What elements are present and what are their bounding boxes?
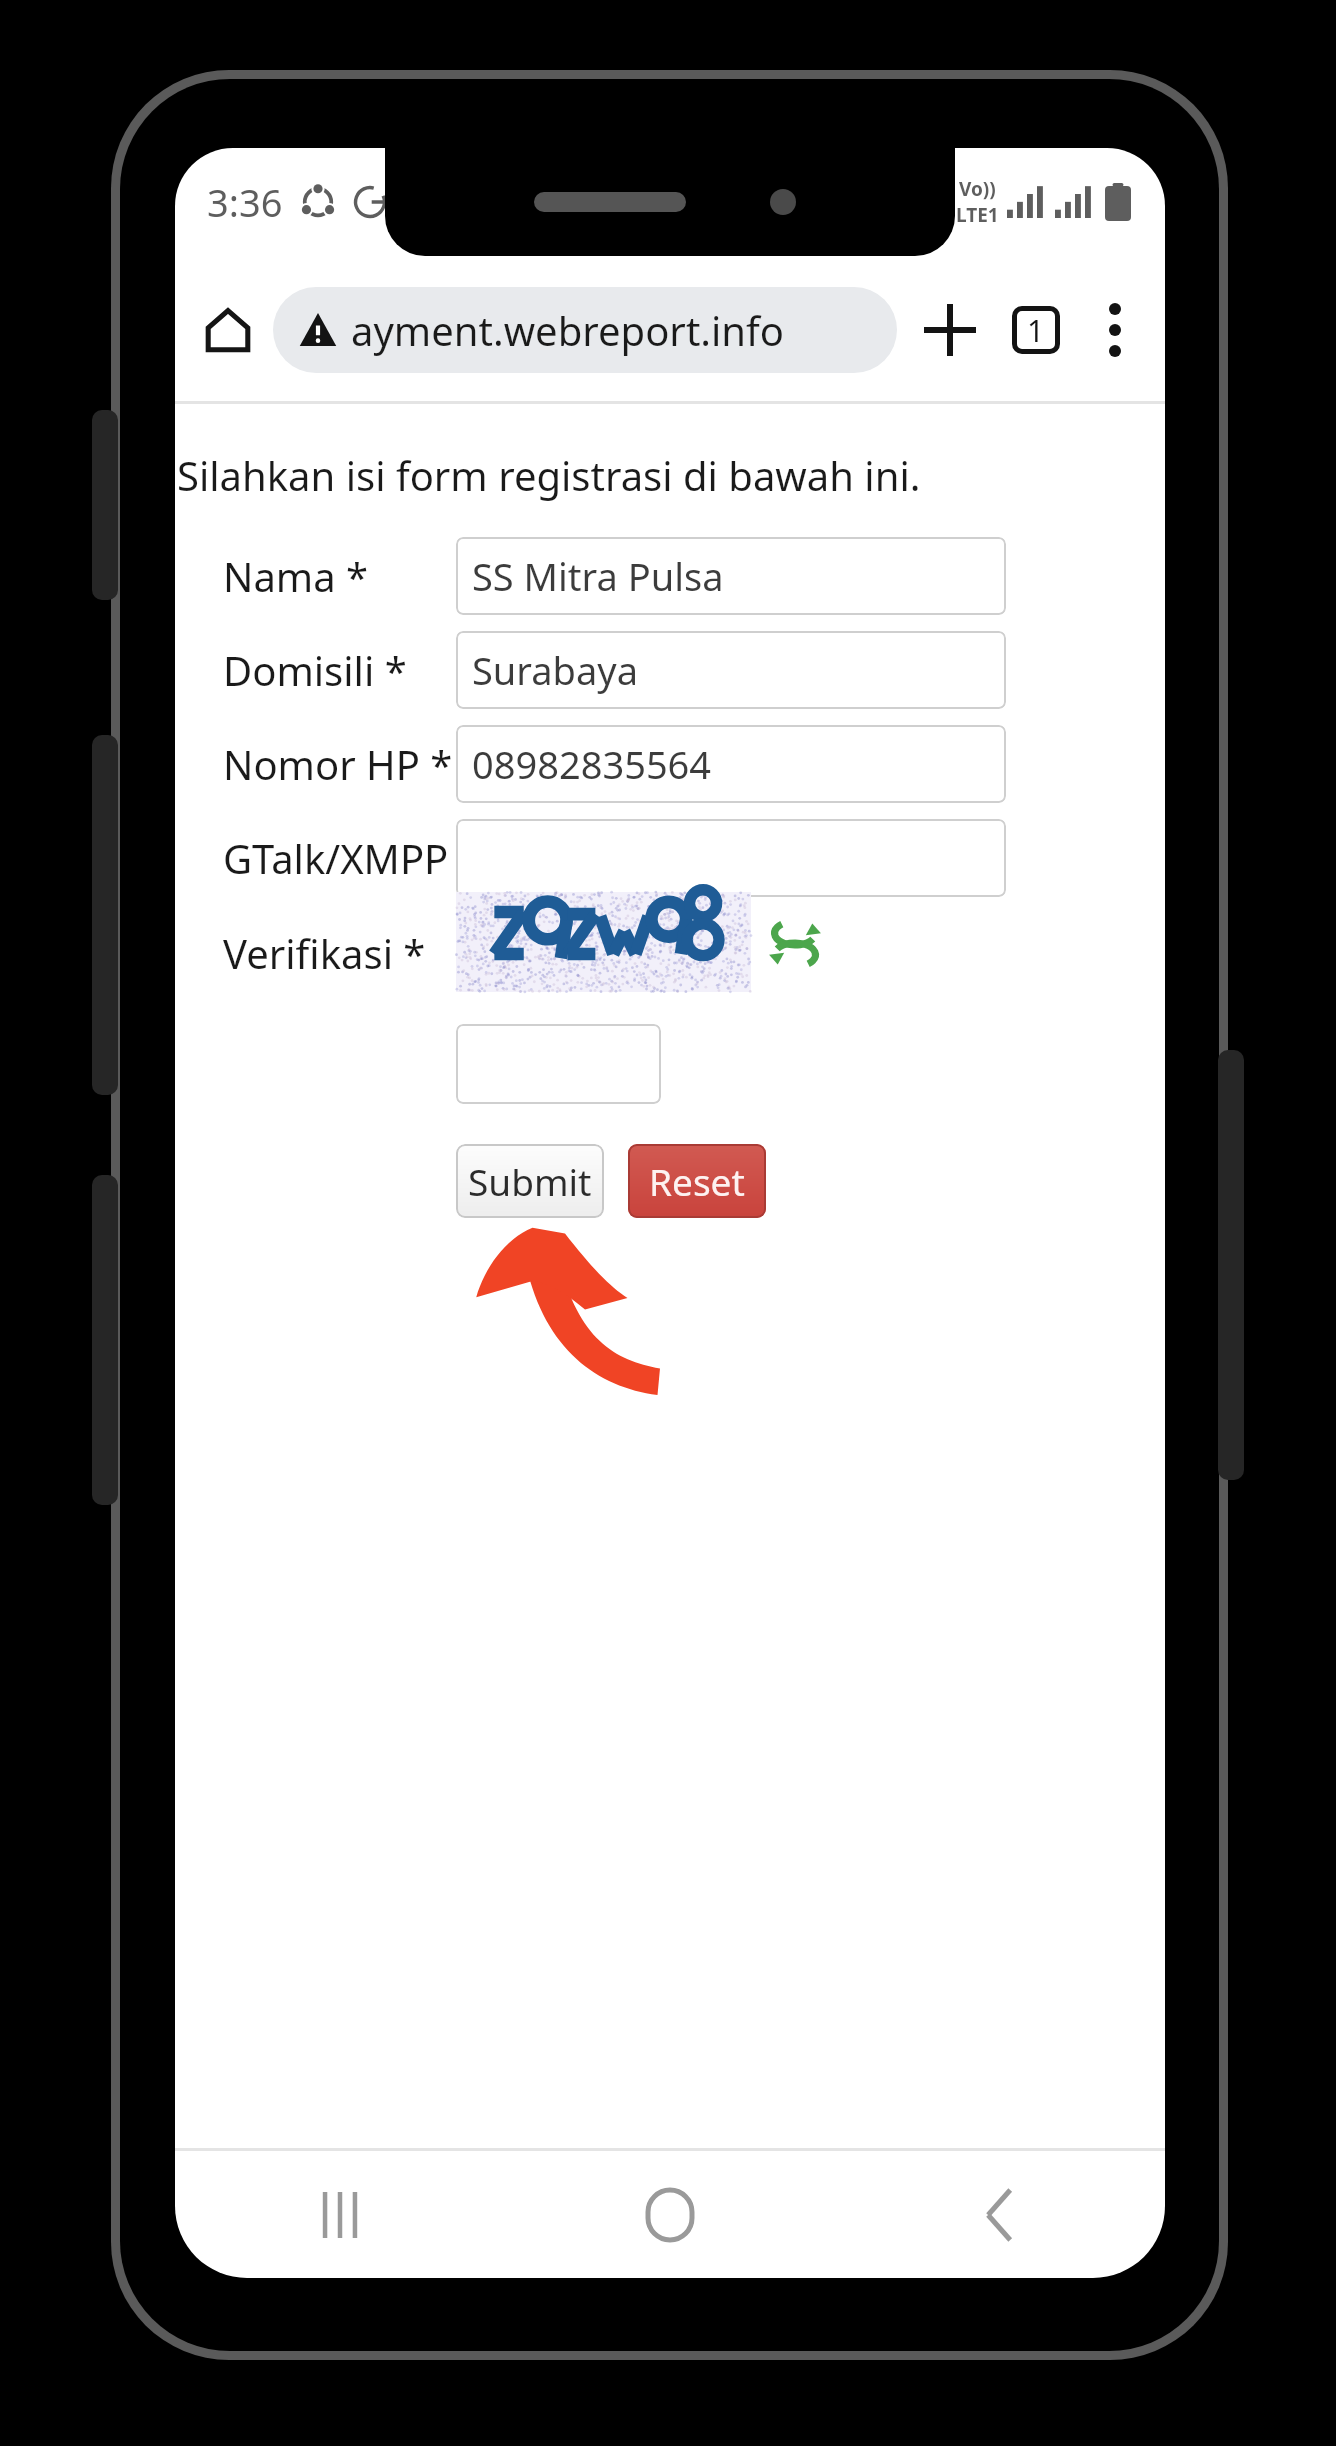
staticText: Verifikasi * [223,926,426,980]
staticText: Nomor HP * [223,737,453,791]
button[interactable]: Domisili * [456,631,1006,709]
staticText: Reset [649,1156,745,1206]
staticText: 08982835564 [472,738,712,790]
button[interactable]: GTalk/XMPP [456,819,1006,897]
staticText: Domisili * [223,643,407,697]
button[interactable]: Tabs [993,287,1079,373]
button[interactable]: Nomor HP * [456,725,1006,803]
button[interactable]: Back [835,2151,1165,2278]
button[interactable]: More options [1079,294,1151,366]
staticText: Submit [468,1156,592,1206]
staticText: 3:36 [207,176,283,228]
button[interactable]: Nama * [456,537,1006,615]
button[interactable]: ayment.webreport.info [273,287,897,373]
button[interactable]: Submit [456,1144,604,1218]
button[interactable]: Recents [175,2151,505,2278]
staticText: LTE1 [956,202,999,228]
staticText: SS Mitra Pulsa [472,550,724,602]
staticText: Nama * [223,549,369,603]
button[interactable]: Verification code input [456,1024,661,1104]
button[interactable]: Reset [628,1144,766,1218]
button[interactable]: New tab [907,287,993,373]
staticText: GTalk/XMPP [223,831,449,885]
staticText: ayment.webreport.info [351,303,785,357]
staticText: Silahkan isi form registrasi di bawah in… [177,448,921,502]
staticText: Surabaya [472,644,638,696]
staticText: Vo)) [959,176,996,202]
staticText: 1 [1027,310,1045,351]
button[interactable]: Home [189,291,267,369]
button[interactable]: Home [505,2151,835,2278]
button[interactable]: Refresh captcha [768,917,822,971]
